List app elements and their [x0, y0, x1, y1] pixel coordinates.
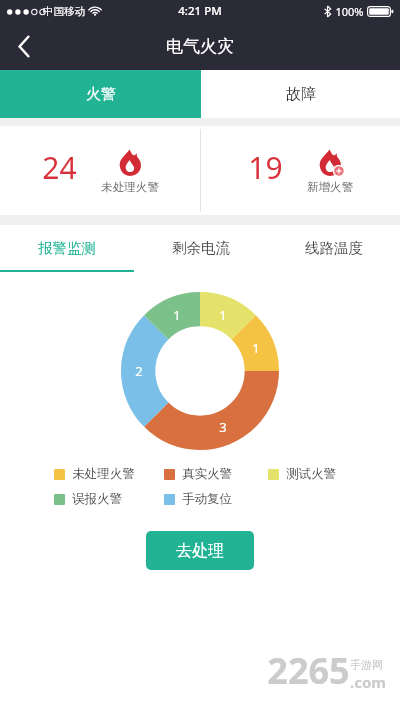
staticText: 电气火灾 — [166, 36, 234, 57]
staticText: 故障 — [286, 85, 316, 104]
button[interactable]: 剩余电流 — [134, 225, 267, 270]
staticText: 报警监测 — [38, 239, 96, 257]
button[interactable]: 手动复位 — [164, 491, 256, 507]
button[interactable]: 19 — [200, 126, 400, 215]
button[interactable]: 真实火警 — [164, 466, 268, 482]
staticText: 2265 — [267, 646, 350, 695]
staticText: 2 — [135, 362, 143, 380]
button[interactable]: 火警 — [0, 70, 201, 118]
staticText: 手游网 — [350, 658, 383, 672]
button[interactable]: 24 — [0, 126, 200, 215]
staticText: 去处理 — [176, 541, 224, 561]
staticText: 未处理火警 — [101, 180, 159, 194]
staticText: 1 — [252, 339, 260, 357]
staticText: 100% — [335, 4, 364, 19]
staticText: 中国移动 — [43, 5, 85, 18]
staticText: 3 — [219, 418, 227, 436]
button[interactable]: 测试火警 — [268, 466, 360, 482]
button[interactable]: 去处理 — [146, 531, 254, 570]
staticText: 新增火警 — [307, 180, 353, 194]
staticText: 24 — [42, 147, 77, 188]
staticText: 未处理火警 — [72, 466, 135, 482]
button[interactable]: 线路温度 — [267, 225, 400, 270]
staticText: 4:21 PM — [178, 3, 222, 19]
staticText: 线路温度 — [305, 239, 363, 257]
button[interactable]: 报警监测 — [0, 225, 134, 270]
button[interactable]: 故障 — [201, 70, 400, 118]
staticText: .com — [350, 672, 386, 692]
button[interactable]: 未处理火警 — [54, 466, 164, 482]
staticText: 19 — [248, 147, 283, 188]
button[interactable]: 误报火警 — [54, 491, 164, 507]
button[interactable]: Back — [0, 22, 48, 70]
staticText: 测试火警 — [286, 466, 336, 482]
staticText: 剩余电流 — [172, 239, 230, 257]
staticText: 手动复位 — [182, 491, 232, 507]
staticText: 1 — [173, 306, 181, 324]
staticText: 1 — [219, 306, 227, 324]
staticText: 火警 — [86, 85, 116, 104]
staticText: 真实火警 — [182, 466, 232, 482]
staticText: 误报火警 — [72, 491, 122, 507]
